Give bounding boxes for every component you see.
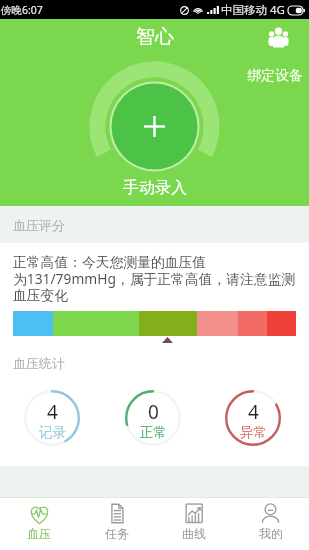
staticText: 异常 — [240, 424, 267, 441]
button[interactable]: 0 — [125, 390, 181, 446]
staticText: 0 — [148, 399, 159, 425]
button[interactable]: 血压 — [0, 498, 78, 550]
staticText: 记录 — [39, 424, 66, 441]
button[interactable]: Manual entry — [89, 61, 220, 192]
staticText: 正常高值：今天您测量的血压值 为131/79mmHg，属于正常高值，请注意监测 … — [13, 254, 296, 304]
staticText: 任务 — [105, 526, 129, 541]
button[interactable]: Family members — [268, 27, 289, 48]
staticText: 我的 — [259, 526, 283, 541]
staticText: 4 — [248, 399, 259, 425]
staticText: 曲线 — [182, 526, 206, 541]
button[interactable]: 任务 — [78, 498, 155, 550]
button[interactable]: 我的 — [232, 498, 309, 550]
button[interactable]: 曲线 — [155, 498, 232, 550]
staticText: 血压统计 — [13, 355, 65, 371]
staticText: 血压 — [27, 526, 51, 541]
staticText: 手动录入 — [123, 178, 187, 198]
staticText: 智心 — [136, 25, 174, 49]
button[interactable]: 绑定设备 — [239, 56, 309, 90]
staticText: 中国移动 4G — [221, 2, 285, 18]
staticText: 血压评分 — [13, 217, 65, 233]
staticText: 4 — [47, 399, 58, 425]
button[interactable]: 4 — [24, 390, 80, 446]
staticText: 傍晚6:07 — [1, 3, 43, 17]
button[interactable]: 4 — [225, 390, 281, 446]
staticText: 正常 — [140, 424, 167, 441]
